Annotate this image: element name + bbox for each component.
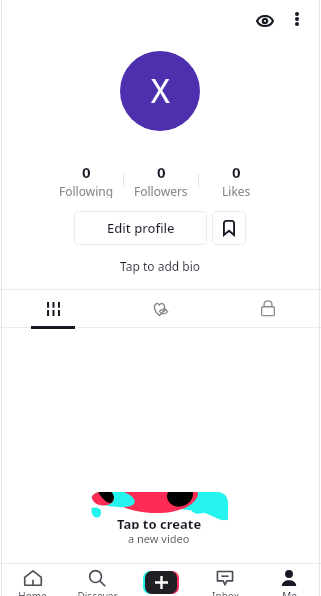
staticText: Home [18,589,47,596]
button[interactable]: Create [143,571,179,594]
staticText: Followers [134,183,188,198]
button[interactable]: Liked [107,290,214,329]
button[interactable]: Discover [65,564,129,596]
button[interactable]: Inbox [193,564,257,596]
button[interactable]: Private [214,290,321,329]
button[interactable]: More options [286,8,308,30]
staticText: Discover [77,589,118,596]
staticText: Following [59,183,114,198]
staticText: Likes [222,183,251,198]
staticText: Me [282,589,297,596]
staticText: Edit profile [107,219,175,237]
button[interactable]: 0 [49,162,123,198]
button[interactable]: Tap to add bio [120,258,201,274]
button[interactable]: Me [257,564,321,596]
button[interactable]: Bookmarks [212,211,246,245]
button[interactable]: Edit profile [74,211,207,245]
staticText: X [151,69,170,113]
button[interactable]: 0 [124,162,198,198]
staticText: a new video [128,531,190,544]
staticText: Inbox [212,589,239,596]
button[interactable]: Home [0,564,65,596]
button[interactable]: Posts [0,290,107,329]
staticText: 0 [82,162,91,182]
button[interactable]: 0 [199,162,273,198]
staticText: Tap to create [117,515,202,529]
button[interactable]: Profile photo [120,51,200,131]
staticText: 0 [232,162,241,182]
staticText: 0 [157,162,166,182]
button[interactable]: Views [252,8,278,34]
button[interactable]: Tap to create [90,492,228,547]
